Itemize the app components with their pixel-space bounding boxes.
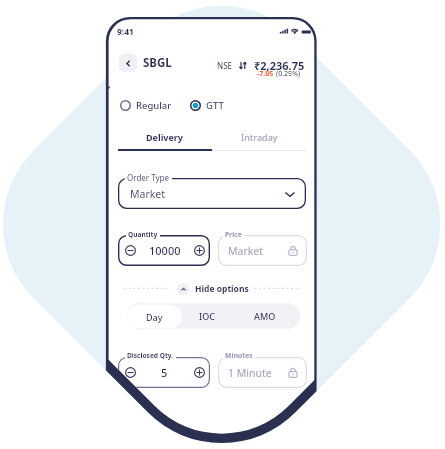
staticText: Day xyxy=(146,311,163,323)
staticText: AMO xyxy=(254,310,276,322)
staticText: Regular xyxy=(136,99,172,112)
staticText: Market xyxy=(228,244,264,258)
staticText: Quantity xyxy=(128,230,158,239)
button[interactable]: Intraday xyxy=(212,129,306,145)
staticText: SBGL xyxy=(143,55,172,71)
staticText: Intraday xyxy=(241,131,278,143)
button[interactable]: Increase xyxy=(194,367,205,378)
staticText: Hide options xyxy=(195,283,249,295)
button[interactable]: Decrease xyxy=(125,245,136,256)
staticText: Market xyxy=(130,187,166,201)
staticText: 5 xyxy=(161,365,168,380)
staticText: GTT xyxy=(206,99,224,112)
staticText: Minutes xyxy=(225,351,253,360)
staticText: ₹2,236.75 xyxy=(254,58,305,73)
staticText: Order Type xyxy=(127,172,170,183)
staticText: 10000 xyxy=(149,243,181,258)
button[interactable]: Back xyxy=(119,54,137,72)
button[interactable]: GTT xyxy=(190,99,224,112)
button[interactable]: Delivery xyxy=(118,129,212,145)
staticText: Delivery xyxy=(146,131,184,143)
staticText: -7.05 xyxy=(257,69,274,79)
button[interactable]: Hide options xyxy=(177,283,249,295)
staticText: (0.25%) xyxy=(276,69,301,79)
button[interactable]: Increase xyxy=(194,245,205,256)
button[interactable]: AMO xyxy=(231,303,299,329)
staticText: IOC xyxy=(199,310,215,322)
staticText: 9:41 xyxy=(117,26,134,38)
button[interactable]: IOC xyxy=(183,303,231,329)
staticText: NSE xyxy=(217,60,233,71)
button[interactable]: Decrease xyxy=(125,367,136,378)
staticText: Price xyxy=(225,230,242,239)
staticText: Disclosed Qty. xyxy=(127,351,174,360)
staticText: 1 Minute xyxy=(228,366,272,380)
button[interactable]: Regular xyxy=(120,99,172,112)
button[interactable]: Day xyxy=(127,305,182,328)
